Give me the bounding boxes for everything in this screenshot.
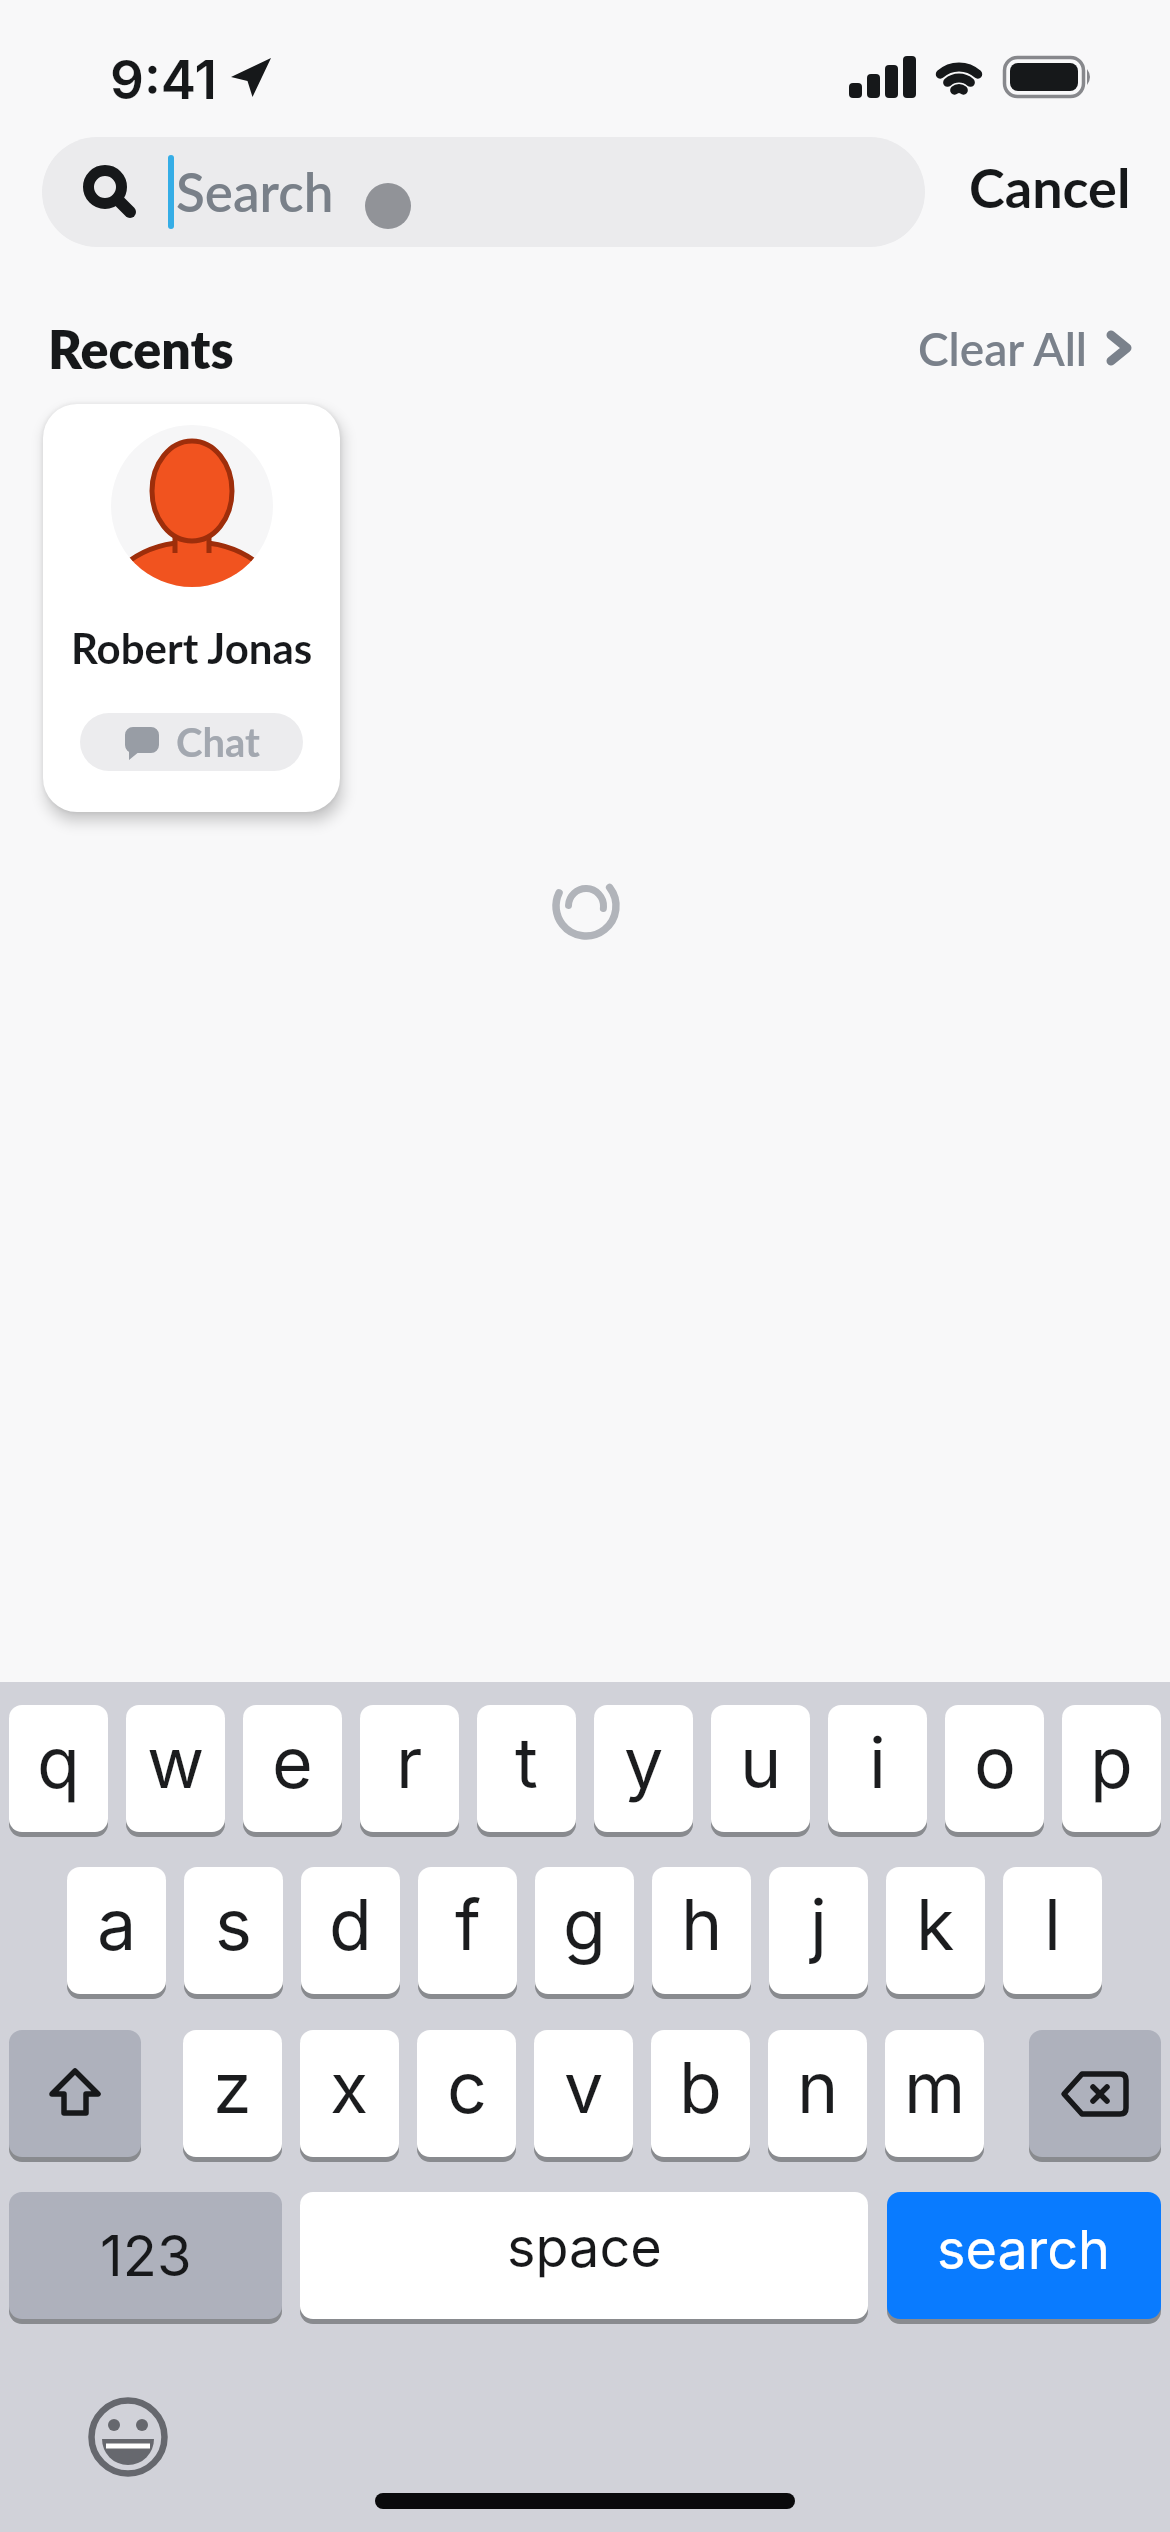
staticText: c xyxy=(447,2045,487,2130)
button[interactable]: o xyxy=(945,1705,1044,1832)
button[interactable]: j xyxy=(769,1867,868,1994)
button[interactable] xyxy=(9,2030,141,2157)
button[interactable]: x xyxy=(300,2030,399,2157)
staticText: h xyxy=(681,1882,723,1967)
staticText: Robert Jonas xyxy=(71,623,313,673)
staticText: Recents xyxy=(48,318,234,378)
staticText: t xyxy=(515,1720,538,1805)
button[interactable]: w xyxy=(126,1705,225,1832)
staticText: w xyxy=(147,1720,205,1805)
button[interactable]: n xyxy=(768,2030,867,2157)
staticText: r xyxy=(396,1720,423,1805)
button[interactable] xyxy=(1029,2030,1161,2157)
button[interactable]: Search xyxy=(42,137,925,247)
staticText: a xyxy=(97,1882,137,1967)
staticText: space xyxy=(507,2215,662,2280)
staticText: n xyxy=(797,2045,839,2130)
staticText: g xyxy=(563,1882,606,1967)
staticText: d xyxy=(329,1882,372,1967)
button[interactable]: search xyxy=(887,2192,1161,2319)
button[interactable]: u xyxy=(711,1705,810,1832)
button[interactable]: e xyxy=(243,1705,342,1832)
button[interactable]: Chat xyxy=(80,713,303,771)
button[interactable]: g xyxy=(535,1867,634,1994)
staticText: search xyxy=(937,2217,1111,2282)
button[interactable]: c xyxy=(417,2030,516,2157)
button[interactable]: d xyxy=(301,1867,400,1994)
staticText: k xyxy=(916,1882,955,1967)
button[interactable]: q xyxy=(9,1705,108,1832)
button[interactable]: 123 xyxy=(9,2192,282,2319)
staticText: m xyxy=(904,2045,966,2130)
staticText: o xyxy=(974,1720,1016,1805)
staticText: Search xyxy=(176,160,334,224)
staticText: 9:41 xyxy=(110,48,217,108)
staticText: j xyxy=(810,1882,827,1967)
button[interactable]: l xyxy=(1003,1867,1102,1994)
staticText: p xyxy=(1090,1720,1133,1805)
staticText: Chat xyxy=(176,718,260,766)
button[interactable]: h xyxy=(652,1867,751,1994)
button[interactable]: v xyxy=(534,2030,633,2157)
button[interactable] xyxy=(88,2397,168,2477)
staticText: l xyxy=(1044,1882,1061,1967)
button[interactable]: space xyxy=(300,2192,868,2319)
button[interactable]: z xyxy=(183,2030,282,2157)
staticText: s xyxy=(215,1882,252,1967)
button[interactable]: b xyxy=(651,2030,750,2157)
staticText: i xyxy=(869,1720,886,1805)
button[interactable]: t xyxy=(477,1705,576,1832)
staticText: b xyxy=(679,2045,722,2130)
button[interactable]: Robert Jonas xyxy=(43,404,340,812)
staticText: x xyxy=(330,2045,369,2130)
button[interactable]: f xyxy=(418,1867,517,1994)
button[interactable]: y xyxy=(594,1705,693,1832)
staticText: Clear All xyxy=(918,321,1088,376)
staticText: y xyxy=(624,1720,664,1805)
button[interactable]: Cancel xyxy=(960,132,1140,242)
button[interactable]: k xyxy=(886,1867,985,1994)
button[interactable]: r xyxy=(360,1705,459,1832)
staticText: q xyxy=(37,1720,80,1805)
staticText: v xyxy=(564,2045,604,2130)
button[interactable]: Clear All xyxy=(918,318,1132,378)
staticText: z xyxy=(213,2045,252,2130)
staticText: e xyxy=(272,1720,313,1805)
staticText: Cancel xyxy=(969,155,1131,220)
button[interactable]: m xyxy=(885,2030,984,2157)
staticText: f xyxy=(455,1882,481,1967)
staticText: 123 xyxy=(100,2222,192,2290)
button[interactable]: p xyxy=(1062,1705,1161,1832)
button[interactable]: s xyxy=(184,1867,283,1994)
staticText: u xyxy=(740,1720,782,1805)
button[interactable]: a xyxy=(67,1867,166,1994)
button[interactable]: i xyxy=(828,1705,927,1832)
